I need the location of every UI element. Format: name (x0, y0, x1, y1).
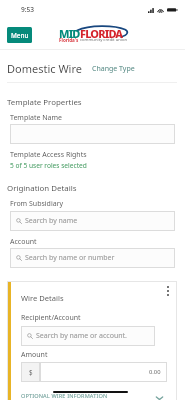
staticText: Origination Details (7, 183, 77, 194)
staticText: Amount (21, 350, 48, 360)
button[interactable]: Search by name or number (10, 248, 175, 268)
button[interactable]: 0.00 (40, 362, 167, 382)
staticText: Recipient/Account (21, 313, 81, 323)
staticText: $ (29, 368, 33, 376)
staticText: Search by name or number (25, 253, 115, 263)
staticText: 0.00 (149, 368, 161, 376)
staticText: From Subsidiary (10, 199, 64, 209)
staticText: Template Name (10, 113, 62, 123)
staticText: MID (59, 26, 80, 41)
staticText: Change Type (92, 64, 135, 74)
staticText: Florida's (59, 37, 80, 43)
staticText: OPTIONAL WIRE INFORMATION (21, 392, 108, 400)
staticText: Account (10, 237, 37, 247)
button[interactable]: Change Type (92, 64, 135, 74)
staticText: Wire Details (21, 293, 64, 303)
staticText: 9:53 (21, 5, 35, 14)
button[interactable]: OPTIONAL WIRE INFORMATION (21, 391, 164, 400)
staticText: Menu (11, 31, 29, 40)
staticText: Template Properties (7, 97, 82, 108)
button[interactable] (10, 124, 175, 144)
staticText: 5 of 5 user roles selected (10, 161, 87, 170)
staticText: Template Access Rights (10, 150, 87, 160)
button[interactable]: Menu (7, 27, 32, 43)
staticText: Search by name (25, 216, 78, 226)
button[interactable]: 5 of 5 user roles selected (10, 161, 87, 170)
staticText: Domestic Wire (7, 61, 82, 76)
button[interactable]: More options (164, 285, 172, 297)
staticText: Search by name or account. (36, 331, 127, 341)
button[interactable]: Search by name (10, 211, 175, 231)
staticText: FLORIDA (80, 26, 123, 41)
staticText: community credit union (80, 37, 128, 43)
button[interactable]: Search by name or account. (21, 326, 155, 346)
